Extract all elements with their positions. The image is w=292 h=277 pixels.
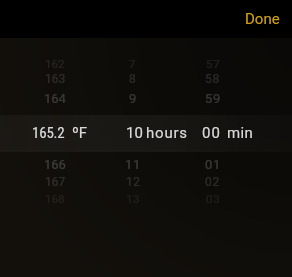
staticText: Done	[245, 10, 280, 28]
staticText: 00	[202, 124, 221, 142]
staticText: 163	[45, 72, 66, 86]
staticText: 01	[205, 157, 222, 172]
staticText: 13	[126, 192, 141, 205]
staticText: 9	[129, 91, 137, 106]
staticText: hours	[146, 124, 188, 142]
staticText: 58	[205, 72, 221, 86]
staticText: 59	[205, 91, 222, 106]
staticText: 8	[129, 72, 137, 86]
staticText: 165.2	[32, 124, 65, 142]
staticText: 167	[45, 175, 66, 189]
staticText: ºF	[72, 124, 88, 142]
staticText: 166	[44, 157, 66, 172]
staticText: 02	[205, 175, 221, 189]
staticText: 03	[206, 192, 221, 205]
button[interactable]: Done	[221, 2, 292, 36]
staticText: 164	[44, 91, 66, 106]
staticText: 168	[45, 192, 65, 205]
staticText: min	[227, 124, 254, 142]
staticText: 7	[129, 57, 137, 70]
staticText: 11	[125, 157, 141, 172]
staticText: 162	[45, 57, 65, 70]
staticText: 12	[126, 175, 141, 189]
staticText: 57	[206, 57, 221, 70]
staticText: 10	[126, 124, 143, 142]
